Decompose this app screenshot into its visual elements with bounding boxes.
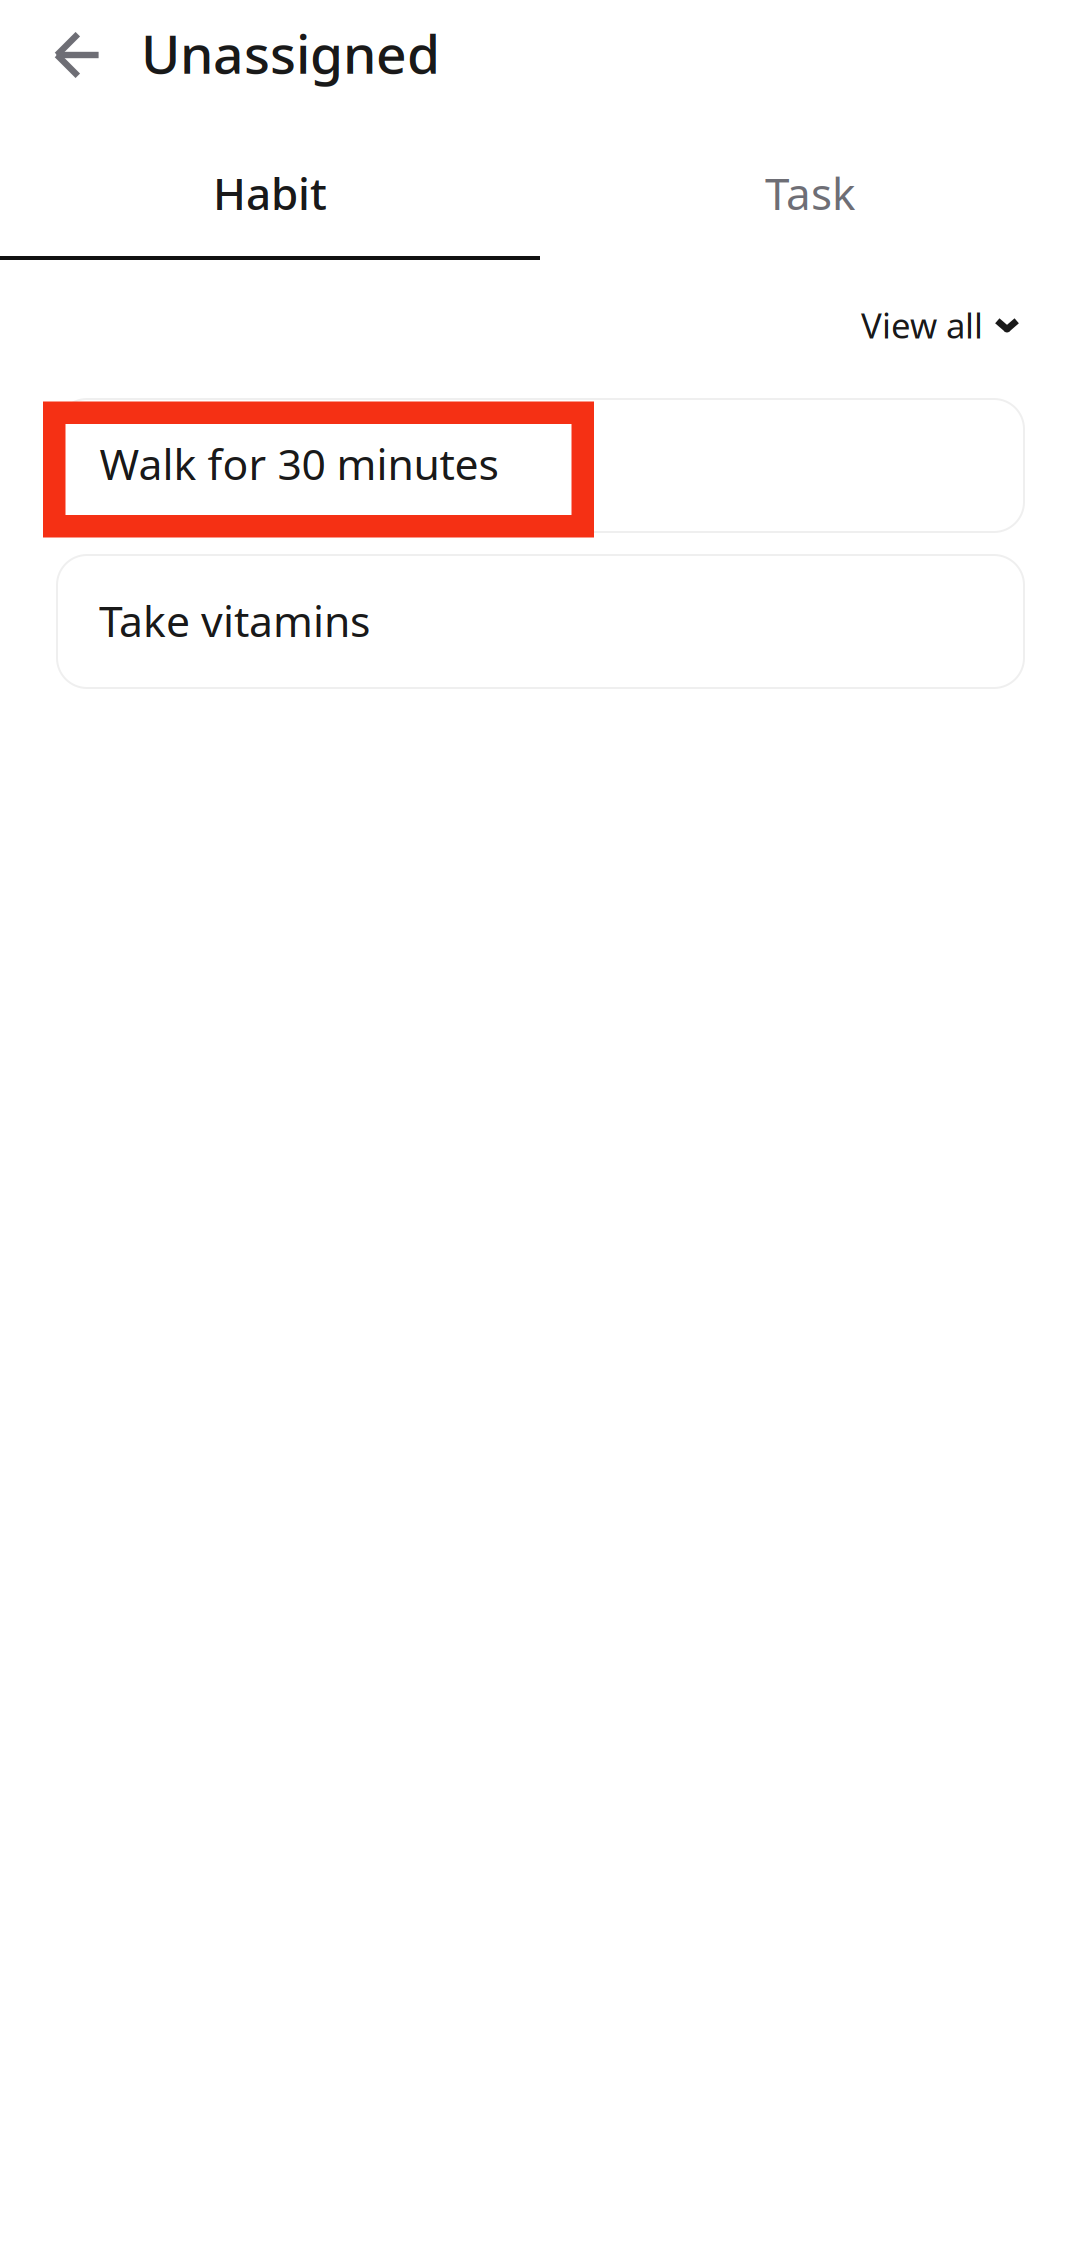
button[interactable]: Task xyxy=(540,133,1080,253)
staticText: Walk for 30 minutes xyxy=(99,436,498,493)
button[interactable]: Habit xyxy=(0,133,540,253)
button[interactable]: Walk for 30 minutes xyxy=(57,399,1024,532)
staticText: Habit xyxy=(213,164,327,222)
button[interactable]: Take vitamins xyxy=(57,555,1024,688)
staticText: Task xyxy=(765,164,855,222)
staticText: Walk for 30 minutes xyxy=(99,435,498,492)
button[interactable]: Back xyxy=(31,9,123,101)
button[interactable]: Walk for 30 minutes xyxy=(57,399,1024,532)
staticText: View all xyxy=(861,302,983,348)
button[interactable]: View all xyxy=(790,282,1020,368)
staticText: Take vitamins xyxy=(99,592,370,649)
staticText: Unassigned xyxy=(141,18,440,88)
